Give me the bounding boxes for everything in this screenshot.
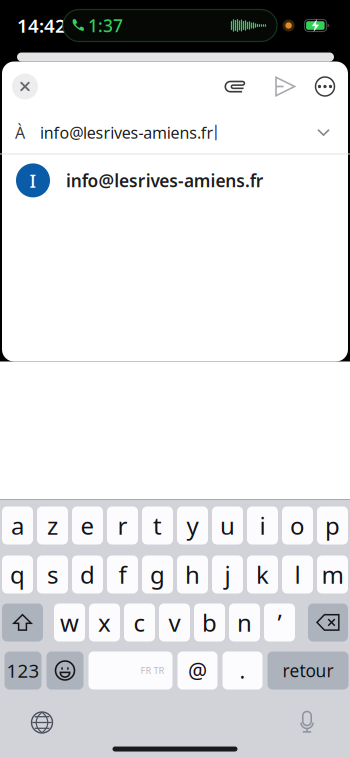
staticText: b	[202, 607, 217, 638]
button[interactable]: z	[37, 506, 68, 544]
button[interactable]: retour	[267, 651, 348, 689]
button[interactable]: n	[229, 603, 260, 641]
button[interactable]: r	[107, 506, 138, 544]
staticText: retour	[282, 659, 333, 682]
button[interactable]: o	[282, 506, 313, 544]
staticText: k	[256, 559, 269, 590]
button[interactable]: I	[0, 154, 350, 206]
staticText: I	[29, 168, 36, 193]
staticText: s	[47, 559, 58, 590]
button[interactable]: e	[72, 506, 103, 544]
staticText: .	[239, 656, 245, 685]
button[interactable]: w	[54, 603, 85, 641]
staticText: FR TR	[140, 664, 164, 677]
button[interactable]: y	[177, 506, 208, 544]
staticText: n	[237, 607, 252, 638]
staticText: o	[290, 510, 305, 541]
staticText: e	[80, 510, 94, 541]
staticText: f	[118, 559, 126, 590]
staticText: v	[168, 607, 180, 638]
button[interactable]: d	[72, 555, 103, 593]
button[interactable]: .	[222, 651, 262, 689]
staticText: info@lesrives-amiens.fr	[40, 122, 214, 143]
button[interactable]: j	[212, 555, 243, 593]
button[interactable]: Joindre un fichier	[220, 61, 254, 111]
button[interactable]: Emoji	[46, 651, 83, 689]
button[interactable]: Dictée	[292, 707, 322, 737]
staticText: a	[11, 510, 24, 541]
button[interactable]: 123	[4, 651, 41, 689]
button[interactable]: l	[282, 555, 313, 593]
button[interactable]: s	[37, 555, 68, 593]
button[interactable]: b	[194, 603, 225, 641]
button[interactable]: m	[317, 555, 348, 593]
button[interactable]: v	[159, 603, 190, 641]
staticText: w	[60, 607, 79, 638]
button[interactable]: Supprimer	[308, 603, 348, 641]
staticText: g	[150, 559, 165, 590]
button[interactable]: q	[2, 555, 33, 593]
button[interactable]: Majuscule	[2, 603, 43, 641]
staticText: h	[185, 559, 200, 590]
staticText: z	[47, 510, 58, 541]
staticText: d	[80, 559, 95, 590]
button[interactable]: h	[177, 555, 208, 593]
staticText: x	[98, 607, 111, 638]
button[interactable]: p	[317, 506, 348, 544]
staticText: @	[188, 656, 207, 685]
staticText: 123	[6, 658, 39, 683]
button[interactable]: c	[124, 603, 155, 641]
button[interactable]: k	[247, 555, 278, 593]
staticText: 14:42	[17, 13, 66, 38]
button[interactable]: FR TR	[88, 651, 172, 689]
staticText: j	[224, 559, 230, 590]
button[interactable]: x	[89, 603, 120, 641]
button[interactable]: @	[177, 651, 217, 689]
staticText: l	[294, 559, 300, 590]
button[interactable]: u	[212, 506, 243, 544]
button[interactable]: g	[142, 555, 173, 593]
button[interactable]: t	[142, 506, 173, 544]
button[interactable]: Changer de clavier	[27, 707, 57, 737]
button[interactable]: a	[2, 506, 33, 544]
button[interactable]: i	[247, 506, 278, 544]
staticText: r	[117, 510, 127, 541]
button[interactable]: Fermer	[1, 61, 49, 111]
staticText: 1:37	[88, 14, 123, 37]
staticText: À	[15, 122, 25, 143]
staticText: c	[133, 607, 145, 638]
staticText: ’	[277, 607, 281, 638]
staticText: q	[10, 559, 25, 590]
staticText: info@lesrives-amiens.fr	[66, 169, 264, 192]
button[interactable]: À	[0, 111, 350, 153]
staticText: u	[220, 510, 235, 541]
staticText: p	[325, 510, 340, 541]
button[interactable]: Plus d'options	[308, 61, 342, 111]
button[interactable]: ’	[264, 603, 295, 641]
staticText: y	[186, 510, 198, 541]
button[interactable]: Envoyer	[268, 61, 302, 111]
staticText: m	[321, 559, 343, 590]
button[interactable]: f	[107, 555, 138, 593]
staticText: i	[259, 510, 265, 541]
staticText: t	[153, 510, 162, 541]
